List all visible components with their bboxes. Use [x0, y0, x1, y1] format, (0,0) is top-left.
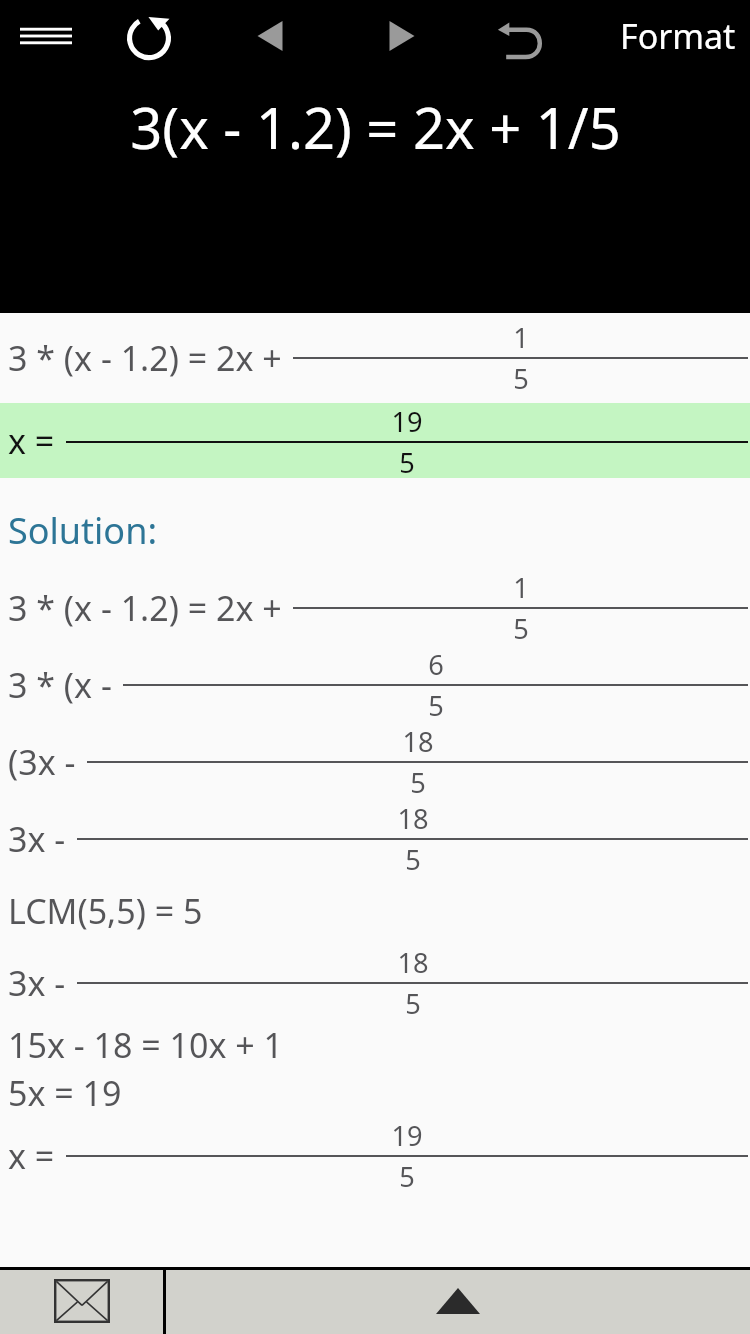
staticText: 19 [391, 1117, 423, 1154]
button[interactable]: Undo [468, 0, 574, 72]
staticText: 5 [513, 360, 529, 397]
staticText: 15x - 18 = 10x + 1 [8, 1022, 283, 1068]
staticText: 18 [397, 944, 429, 981]
staticText: 5 [399, 1158, 415, 1194]
staticText: 18 [397, 800, 429, 837]
button[interactable]: x = [0, 403, 750, 478]
button[interactable]: 3 * (x - 1.2) = 2x + [0, 313, 750, 403]
staticText: 5x = 19 [8, 1070, 122, 1116]
staticText: 3 * (x - [8, 662, 121, 708]
button[interactable]: Format [606, 0, 750, 72]
staticText: 5 [410, 764, 426, 800]
staticText: 5 [513, 610, 529, 646]
button[interactable]: Menu [0, 0, 92, 72]
button[interactable]: Recalculate [92, 0, 205, 72]
button[interactable]: Next [335, 0, 468, 72]
staticText: 3 * (x - 1.2) = 2x + [8, 335, 291, 381]
button[interactable]: Scroll up [166, 1267, 750, 1334]
staticText: 18 [402, 723, 434, 760]
staticText: 6 [428, 646, 444, 683]
staticText: Format [620, 13, 736, 59]
staticText: 5 [405, 841, 421, 877]
staticText: (3x - [8, 739, 85, 785]
staticText: 5 [428, 687, 444, 723]
staticText: Solution: [8, 506, 158, 555]
button[interactable]: Previous [205, 0, 335, 72]
staticText: 3(x - 1.2) = 2x + 1/5 [130, 89, 621, 165]
staticText: 1 [513, 569, 529, 606]
staticText: x = [8, 418, 64, 464]
staticText: 3x - [8, 960, 75, 1006]
staticText: 3x - [8, 816, 75, 862]
staticText: 1 [513, 319, 529, 356]
staticText: 3 * (x - 1.2) = 2x + [8, 585, 291, 631]
staticText: x = [8, 1133, 64, 1179]
staticText: 5 [399, 444, 415, 478]
staticText: 19 [391, 403, 423, 440]
staticText: 5 [405, 985, 421, 1021]
button[interactable]: Send by email [0, 1267, 163, 1334]
staticText: LCM(5,5) = 5 [8, 888, 203, 934]
